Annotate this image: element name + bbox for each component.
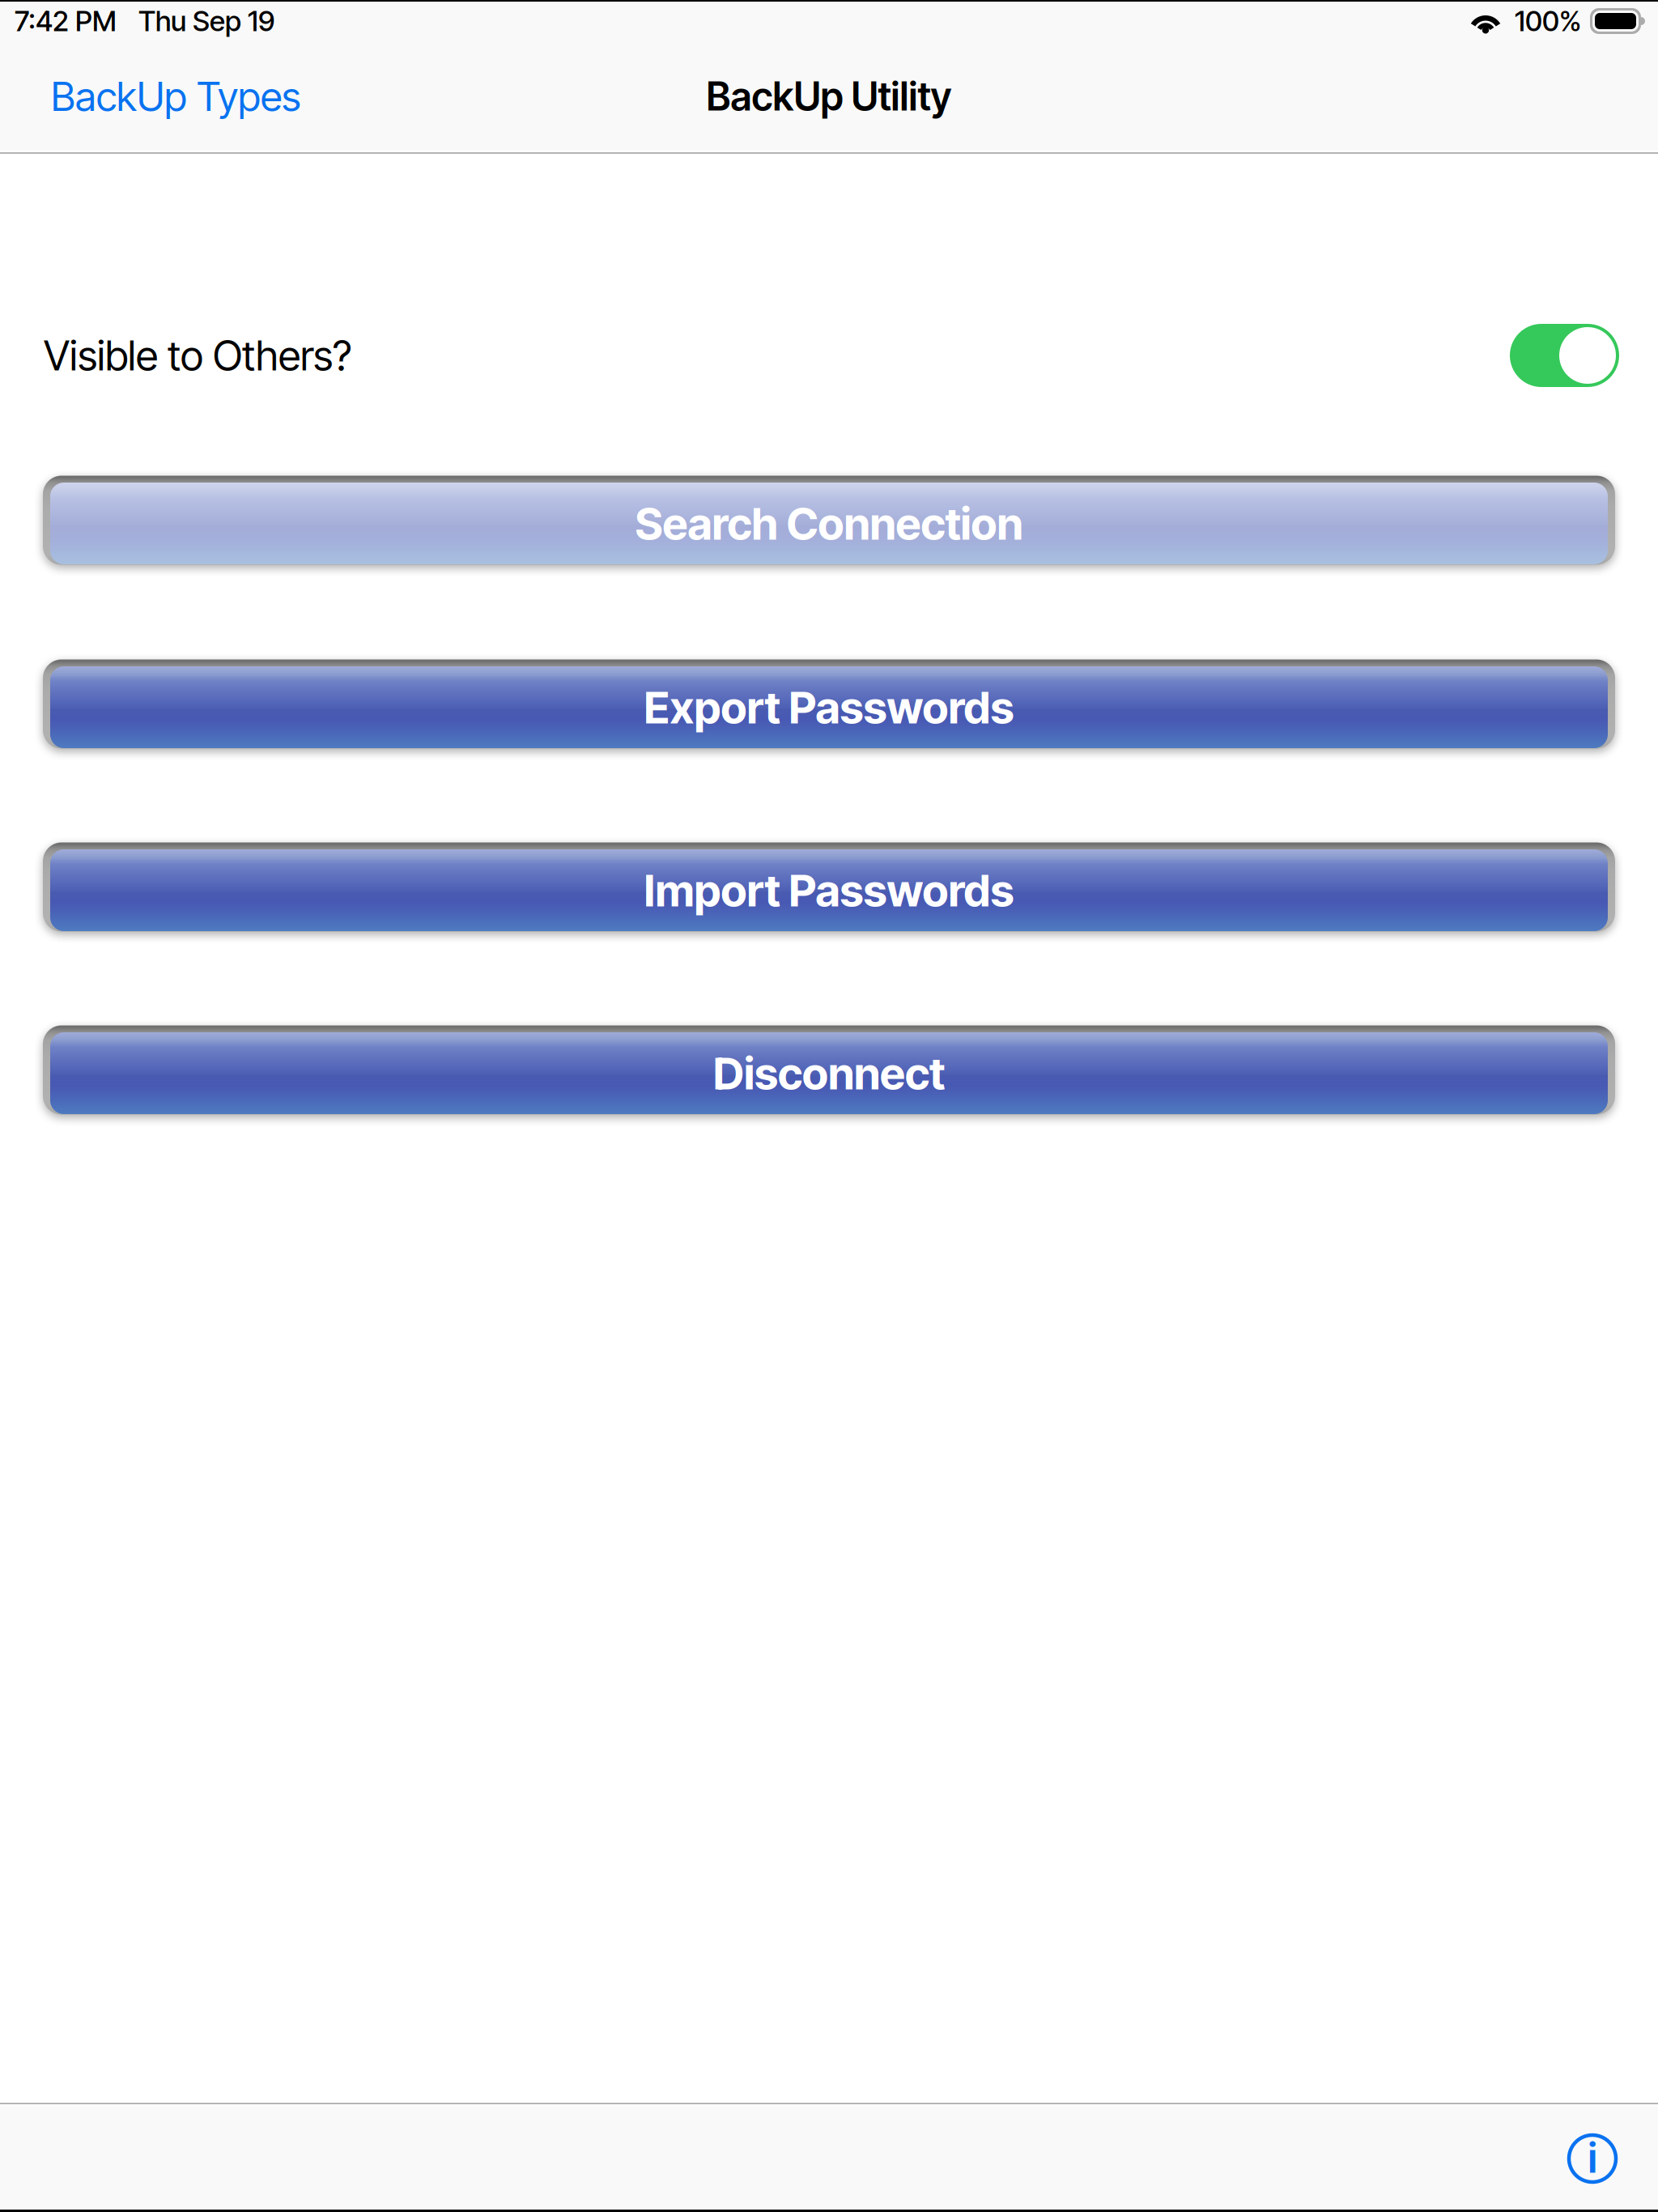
staticText: 100% <box>1515 4 1581 38</box>
button[interactable]: Import Passwords <box>43 840 1615 931</box>
staticText: Visible to Others? <box>44 331 351 380</box>
button[interactable]: Visible to Others <box>1510 324 1619 387</box>
staticText: Import Passwords <box>644 863 1014 917</box>
staticText: Search Connection <box>635 497 1023 550</box>
button[interactable]: Info <box>1561 2127 1624 2190</box>
button[interactable]: Export Passwords <box>43 657 1615 748</box>
staticText: 7:42 PM <box>15 4 117 38</box>
staticText: Thu Sep 19 <box>138 4 274 38</box>
staticText: Export Passwords <box>644 680 1014 734</box>
staticText: BackUp Utility <box>706 73 952 120</box>
staticText: BackUp Types <box>51 72 300 121</box>
button[interactable]: BackUp Types <box>46 61 305 132</box>
staticText: Disconnect <box>713 1046 945 1100</box>
button[interactable]: Disconnect <box>43 1023 1615 1114</box>
staticText: i <box>1588 2133 1597 2183</box>
button[interactable]: Search Connection <box>43 473 1615 564</box>
